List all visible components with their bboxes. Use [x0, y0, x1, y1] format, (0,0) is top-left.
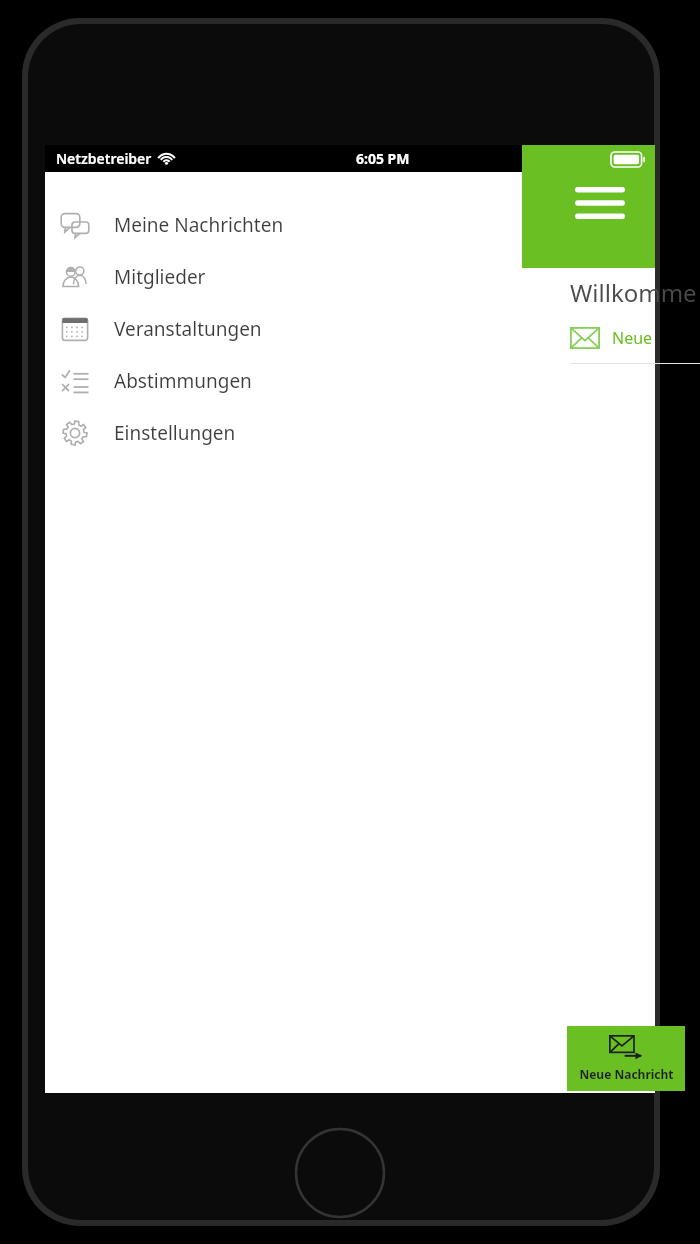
- staticText: Veranstaltungen: [114, 316, 262, 342]
- button[interactable]: Neue Nachricht: [570, 321, 700, 355]
- button[interactable]: Abstimmungen: [45, 355, 655, 407]
- staticText: Willkommen: [570, 276, 700, 309]
- staticText: Neue Nachricht: [579, 1066, 674, 1082]
- button[interactable]: Menu: [567, 178, 633, 228]
- button[interactable]: Einstellungen: [45, 407, 655, 459]
- button[interactable]: Meine Nachrichten: [45, 199, 655, 251]
- button[interactable]: Veranstaltungen: [45, 303, 655, 355]
- staticText: Einstellungen: [114, 420, 236, 446]
- staticText: 6:05 PM: [356, 149, 410, 168]
- staticText: Mitglieder: [114, 264, 206, 290]
- button[interactable]: Neue Nachricht: [567, 1026, 685, 1091]
- staticText: Abstimmungen: [114, 368, 252, 394]
- staticText: Meine Nachrichten: [114, 212, 284, 238]
- staticText: Netzbetreiber: [56, 149, 152, 168]
- button[interactable]: Mitglieder: [45, 251, 655, 303]
- staticText: Neue Nachricht: [612, 327, 700, 349]
